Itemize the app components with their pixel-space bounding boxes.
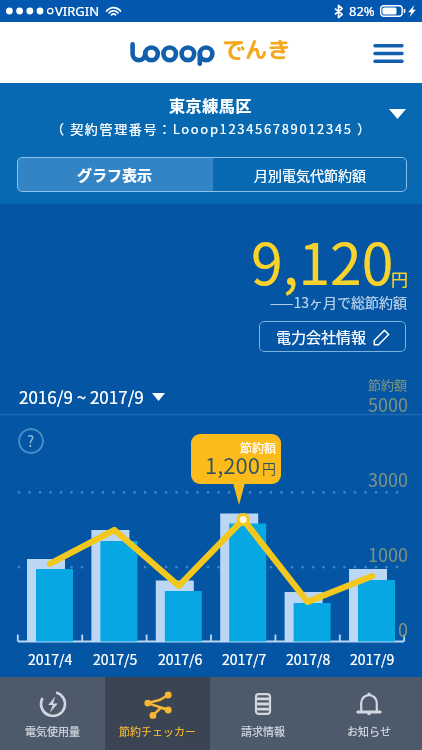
button[interactable]: 月別電気代節約額 xyxy=(213,157,407,192)
staticText: （ 契約管理番号：Looop123456789012345 ） xyxy=(51,119,372,138)
staticText: ——13ヶ月で総節約額 xyxy=(270,292,408,312)
button[interactable]: グラフ表示 xyxy=(17,157,213,192)
staticText: 2017/8 xyxy=(286,649,331,669)
staticText: 3000 xyxy=(368,466,408,492)
button[interactable]: 2016/9 ~ 2017/9 xyxy=(19,384,165,409)
staticText: 1,200 xyxy=(205,448,260,480)
staticText: 2016/9 ~ 2017/9 xyxy=(19,384,144,409)
button[interactable]: 電気使用量 xyxy=(0,677,105,750)
staticText: 節約額 xyxy=(368,375,408,394)
staticText: 5000 xyxy=(368,391,408,417)
staticText: 2017/6 xyxy=(158,649,203,669)
staticText: 2017/4 xyxy=(28,649,73,669)
staticText: VIRGIN xyxy=(55,2,100,20)
staticText: 請求情報 xyxy=(241,723,285,739)
staticText: お知らせ xyxy=(347,723,391,739)
staticText: 2017/9 xyxy=(350,649,395,669)
staticText: でんき xyxy=(222,33,290,65)
staticText: 円 xyxy=(391,266,408,291)
staticText: 節約額 xyxy=(240,439,277,456)
staticText: 1000 xyxy=(368,541,408,567)
button[interactable]: Select contract xyxy=(382,99,412,129)
staticText: グラフ表示 xyxy=(77,164,153,186)
staticText: 9,120 xyxy=(251,219,394,302)
staticText: 2017/7 xyxy=(222,649,267,669)
button[interactable]: 節約額 xyxy=(191,434,281,484)
staticText: 電気使用量 xyxy=(25,723,80,739)
staticText: 東京練馬区 xyxy=(169,93,253,116)
button[interactable]: お知らせ xyxy=(316,677,422,750)
staticText: 電力会社情報 xyxy=(276,326,367,348)
staticText: 82% xyxy=(349,2,375,20)
button[interactable]: 電力会社情報 xyxy=(259,321,406,352)
button[interactable]: Help xyxy=(18,428,44,454)
staticText: ? xyxy=(27,430,35,452)
staticText: 0 xyxy=(398,616,408,642)
button[interactable]: Menu xyxy=(364,29,412,77)
button[interactable]: 請求情報 xyxy=(210,677,316,750)
staticText: 節約チェッカー xyxy=(119,723,196,739)
button[interactable]: 節約チェッカー xyxy=(105,677,210,750)
staticText: 月別電気代節約額 xyxy=(254,165,366,185)
staticText: 2017/5 xyxy=(93,649,138,669)
staticText: 円 xyxy=(262,458,276,478)
